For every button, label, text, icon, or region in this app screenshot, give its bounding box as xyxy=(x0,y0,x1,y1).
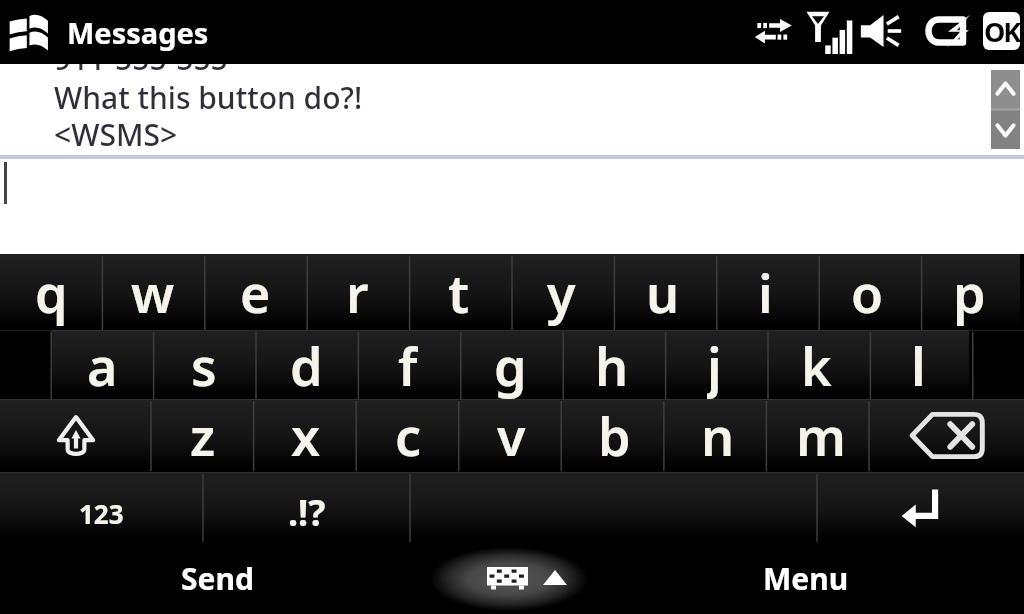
button[interactable]: f xyxy=(357,330,459,399)
button[interactable]: b xyxy=(563,399,666,472)
staticText: a xyxy=(87,330,118,399)
button[interactable]: z xyxy=(151,399,254,472)
staticText: .!? xyxy=(288,488,326,537)
staticText: b xyxy=(598,400,631,471)
button[interactable]: i xyxy=(714,254,816,330)
staticText: Menu xyxy=(763,558,849,599)
staticText: m xyxy=(796,400,846,471)
staticText: z xyxy=(190,400,216,471)
staticText: p xyxy=(953,257,986,328)
button[interactable]: OK xyxy=(983,12,1020,50)
staticText: c xyxy=(395,400,422,471)
button[interactable]: c xyxy=(357,399,460,472)
staticText: f xyxy=(398,330,418,399)
button[interactable]: l xyxy=(867,330,969,399)
button[interactable]: e xyxy=(204,254,306,330)
staticText: x xyxy=(291,400,321,471)
button[interactable] xyxy=(0,159,1024,254)
button[interactable]: t xyxy=(408,254,510,330)
button[interactable]: Menu xyxy=(646,543,966,614)
other: Volume xyxy=(860,15,902,47)
staticText: r xyxy=(346,257,369,328)
button[interactable]: v xyxy=(460,399,563,472)
button[interactable]: m xyxy=(769,399,872,472)
button[interactable]: n xyxy=(666,399,769,472)
button[interactable]: q xyxy=(0,254,102,330)
staticText: OK xyxy=(984,13,1020,50)
staticText: d xyxy=(290,330,323,399)
staticText: j xyxy=(707,330,722,399)
staticText: 123 xyxy=(79,496,124,531)
button[interactable]: Shift xyxy=(0,399,151,472)
staticText: o xyxy=(851,257,884,328)
button[interactable]: Hide keyboard xyxy=(430,547,588,611)
button[interactable]: Send xyxy=(57,543,377,614)
staticText: u xyxy=(646,257,680,328)
other: Battery charging xyxy=(922,14,972,48)
button[interactable]: s xyxy=(153,330,255,399)
button[interactable]: h xyxy=(561,330,663,399)
staticText: n xyxy=(701,400,735,471)
staticText: w xyxy=(131,257,175,328)
staticText: v xyxy=(497,400,526,471)
button[interactable]: 911-555-555 xyxy=(0,64,1024,155)
button[interactable]: u xyxy=(612,254,714,330)
button[interactable]: Space xyxy=(410,472,817,543)
button[interactable]: w xyxy=(102,254,204,330)
staticText: Send xyxy=(181,558,254,599)
button[interactable]: a xyxy=(51,330,153,399)
staticText: 911-555-555 xyxy=(54,64,228,79)
staticText: h xyxy=(595,330,629,399)
button[interactable]: r xyxy=(306,254,408,330)
staticText: <WSMS> xyxy=(54,114,178,155)
button[interactable]: Scroll xyxy=(991,70,1020,149)
button[interactable]: 123 xyxy=(0,472,203,543)
staticText: y xyxy=(547,257,576,328)
staticText: g xyxy=(494,330,527,399)
button[interactable]: o xyxy=(816,254,918,330)
button[interactable]: d xyxy=(255,330,357,399)
button[interactable]: j xyxy=(663,330,765,399)
other: Data connection xyxy=(754,14,796,48)
staticText: What this button do?! xyxy=(54,77,363,118)
staticText: q xyxy=(35,257,68,328)
staticText: Messages xyxy=(67,13,209,52)
staticText: s xyxy=(191,330,217,399)
button[interactable]: g xyxy=(459,330,561,399)
button[interactable]: x xyxy=(254,399,357,472)
button[interactable]: p xyxy=(918,254,1020,330)
other: Signal strength xyxy=(806,11,854,54)
button[interactable]: k xyxy=(765,330,867,399)
button[interactable]: Backspace xyxy=(872,399,1024,472)
staticText: e xyxy=(240,257,271,328)
button[interactable]: y xyxy=(510,254,612,330)
staticText: i xyxy=(758,257,773,328)
button[interactable]: Enter xyxy=(817,472,1024,543)
button[interactable]: Start xyxy=(7,12,51,52)
staticText: k xyxy=(801,330,832,399)
button[interactable]: .!? xyxy=(203,472,410,543)
staticText: t xyxy=(448,257,470,328)
staticText: l xyxy=(911,330,926,399)
